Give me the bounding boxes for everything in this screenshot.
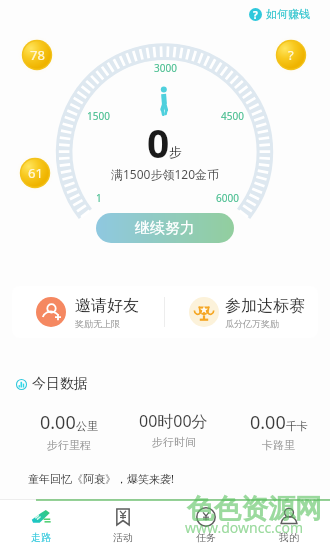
staticText: ? [253, 8, 258, 21]
button[interactable]: 继续努力 [96, 213, 234, 243]
button[interactable]: 我的 [247, 500, 330, 550]
staticText: 步行时间 [152, 435, 196, 449]
staticText: 色色资源网 [187, 492, 322, 526]
staticText: 我的 [279, 531, 299, 544]
staticText: 瓜分亿万奖励 [225, 318, 279, 329]
staticText: 1 [96, 191, 102, 205]
staticText: 如何赚钱 [266, 7, 310, 21]
staticText: 78 [30, 46, 45, 64]
staticText: 继续努力 [135, 219, 195, 238]
staticText: 步行里程 [47, 438, 91, 452]
button[interactable]: Coin ? [272, 36, 310, 74]
button[interactable]: Coin 78 [18, 36, 56, 74]
staticText: www.downcc.com [185, 518, 304, 537]
staticText: 活动 [113, 531, 133, 544]
staticText: 61 [28, 164, 43, 182]
button[interactable]: ? [246, 4, 313, 24]
staticText: 6000 [216, 191, 239, 205]
staticText: 参加达标赛 [225, 296, 305, 316]
staticText: 0.00 [250, 410, 286, 435]
staticText: 奖励无上限 [75, 318, 120, 329]
staticText: 1500 [87, 109, 110, 123]
staticText: 千卡 [286, 419, 308, 433]
staticText: 童年回忆《阿衰》，爆笑来袭! [28, 471, 174, 486]
button[interactable]: 活动 [82, 500, 164, 550]
staticText: 3000 [154, 61, 177, 75]
button[interactable]: Coin 61 [16, 154, 54, 192]
staticText: 公里 [76, 419, 98, 433]
staticText: 0.00 [40, 410, 76, 435]
button[interactable]: 今日数据 [16, 375, 88, 393]
button[interactable]: 走路 [0, 500, 82, 550]
staticText: 今日数据 [32, 375, 88, 393]
staticText: 任务 [196, 531, 216, 544]
button[interactable]: 参加达标赛 [165, 286, 318, 338]
staticText: 邀请好友 [75, 296, 139, 316]
button[interactable]: 童年回忆《阿衰》，爆笑来袭! [0, 462, 330, 494]
staticText: 卡路里 [262, 438, 295, 452]
button[interactable]: 邀请好友 [12, 286, 164, 338]
staticText: 满1500步领120金币 [111, 166, 220, 182]
staticText: 00时00分 [139, 410, 208, 432]
staticText: 0 [147, 116, 170, 169]
staticText: 走路 [31, 531, 51, 544]
staticText: ? [288, 46, 294, 64]
staticText: 4500 [221, 109, 244, 123]
button[interactable]: 任务 [164, 500, 247, 550]
staticText: 步 [169, 144, 182, 160]
